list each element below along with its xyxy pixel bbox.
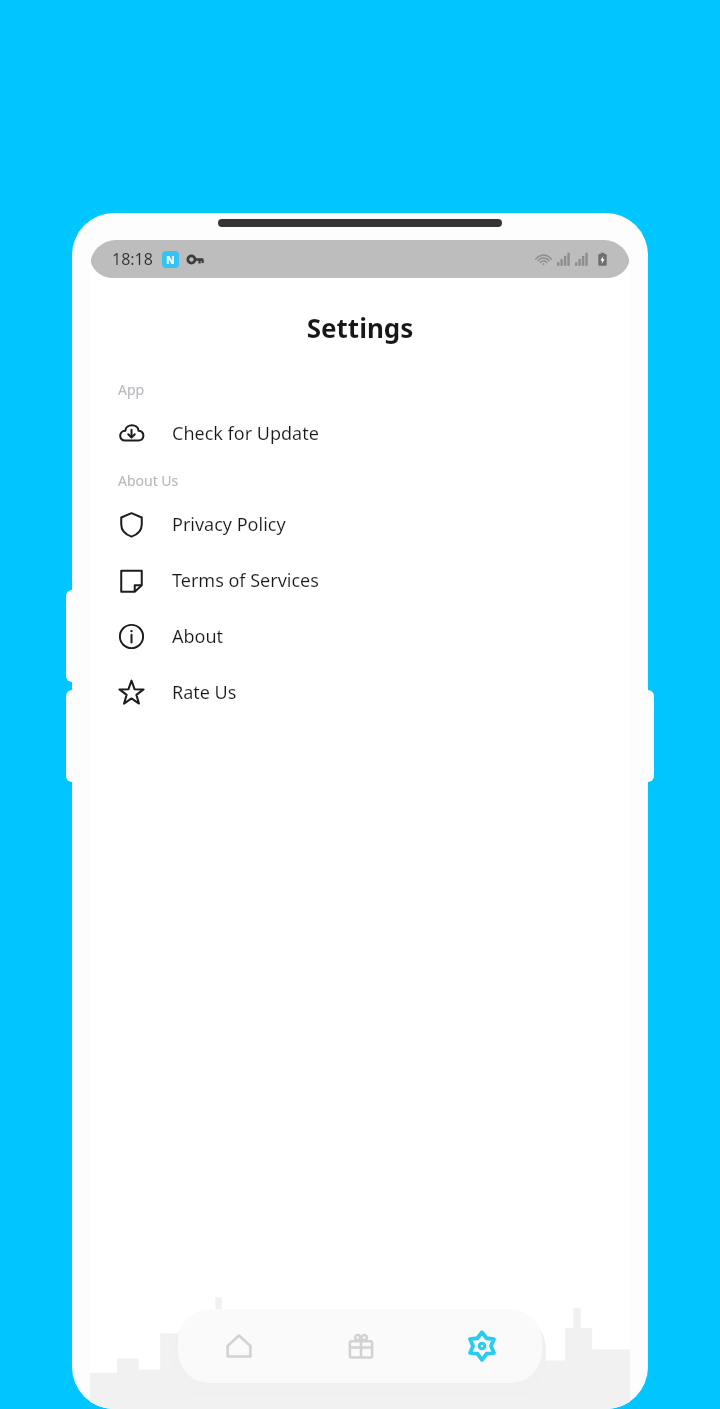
staticText: 18:18 <box>112 248 153 270</box>
button[interactable]: Terms of Services <box>90 552 630 608</box>
button[interactable]: Check for Update <box>90 405 630 461</box>
staticText: Rate Us <box>172 680 237 705</box>
staticText: N <box>166 252 175 267</box>
staticText: Check for Update <box>172 421 319 446</box>
staticText: App <box>118 380 145 399</box>
staticText: About Us <box>118 471 179 490</box>
staticText: Privacy Policy <box>172 512 286 537</box>
staticText: About <box>172 624 224 649</box>
staticText: Settings <box>90 310 630 345</box>
staticText: Terms of Services <box>172 568 319 593</box>
button[interactable]: Privacy Policy <box>90 496 630 552</box>
button[interactable]: About <box>90 608 630 664</box>
button[interactable]: Rate Us <box>90 664 630 720</box>
button[interactable]: Home <box>178 1309 300 1383</box>
button[interactable]: Rewards <box>300 1309 421 1383</box>
button[interactable]: Settings <box>421 1309 542 1383</box>
